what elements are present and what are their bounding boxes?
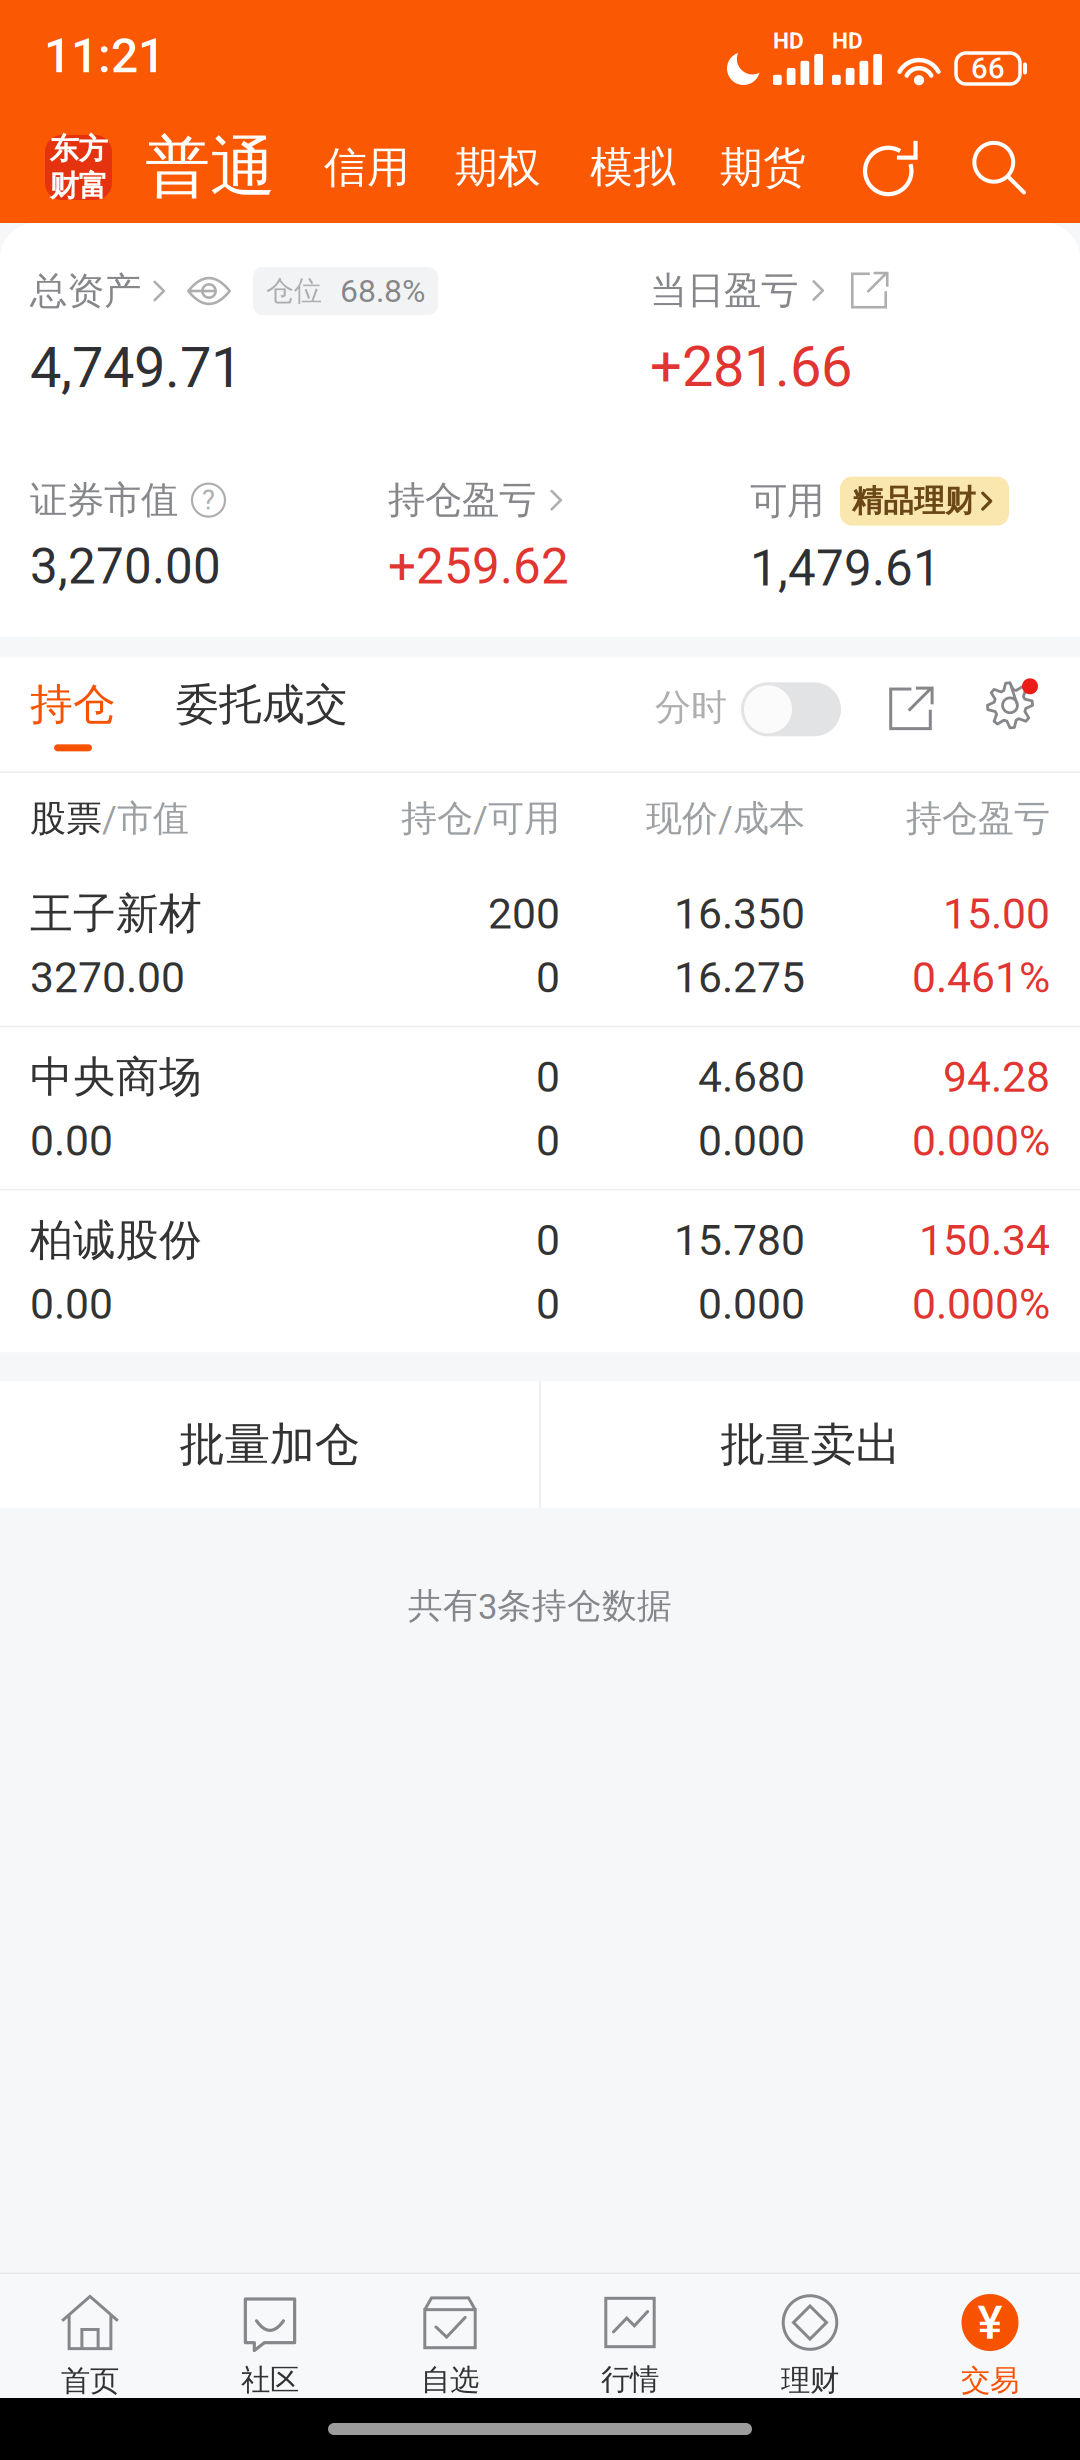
button[interactable]: 理财 <box>720 2274 900 2398</box>
staticText: 精品理财 <box>852 482 976 520</box>
button[interactable]: 社区 <box>180 2274 360 2398</box>
staticText: 150.34 <box>919 1215 1050 1265</box>
staticText: 东方 <box>49 130 107 167</box>
staticText: 11:21 <box>44 28 165 84</box>
button[interactable]: 持仓 <box>30 678 116 751</box>
staticText: /市值 <box>102 796 189 841</box>
staticText: 0.000 <box>698 1279 805 1329</box>
staticText: 首页 <box>61 2362 119 2399</box>
staticText: 15.00 <box>943 889 1050 939</box>
button[interactable]: 精品理财 <box>840 477 1009 526</box>
button[interactable]: 行情 <box>540 2274 720 2398</box>
staticText: 总资产 <box>30 267 141 314</box>
staticText: 94.28 <box>943 1052 1050 1102</box>
staticText: 0.000 <box>698 1116 805 1166</box>
staticText: 柏诚股份 <box>30 1213 202 1267</box>
button[interactable]: Export <box>888 686 933 731</box>
staticText: 68.8% <box>340 272 425 310</box>
staticText: 3270.00 <box>30 953 185 1003</box>
button[interactable]: Refresh <box>861 138 919 196</box>
staticText: 1,479.61 <box>750 540 941 597</box>
staticText: 委托成交 <box>176 678 348 731</box>
staticText: 4.680 <box>698 1052 805 1102</box>
staticText: 现价/成本 <box>646 796 805 841</box>
button[interactable]: 批量加仓 <box>0 1381 539 1508</box>
staticText: 共有3条持仓数据 <box>408 1584 672 1628</box>
staticText: 批量卖出 <box>720 1416 900 1473</box>
button[interactable]: Search <box>970 138 1028 196</box>
staticText: 200 <box>488 889 560 939</box>
staticText: 交易 <box>961 2362 1019 2399</box>
staticText: ? <box>202 484 215 516</box>
staticText: 王子新材 <box>30 887 202 941</box>
button[interactable]: ¥ <box>900 2274 1080 2398</box>
staticText: 当日盈亏 <box>650 267 798 314</box>
staticText: HD <box>773 27 804 54</box>
button[interactable]: 王子新材 <box>0 864 1080 1026</box>
button[interactable]: 柏诚股份 <box>0 1190 1080 1352</box>
staticText: 4,749.71 <box>30 335 242 401</box>
button[interactable]: 期权 <box>455 141 541 194</box>
button[interactable]: 首页 <box>0 2274 180 2398</box>
staticText: 理财 <box>781 2362 839 2399</box>
staticText: 0.000% <box>912 1116 1050 1166</box>
staticText: 证券市值 <box>30 477 178 524</box>
staticText: 可用 <box>750 478 824 525</box>
staticText: 财富 <box>49 167 107 204</box>
staticText: 0.00 <box>30 1116 113 1166</box>
button[interactable]: 中央商场 <box>0 1027 1080 1189</box>
staticText: 中央商场 <box>30 1050 202 1104</box>
staticText: 行情 <box>601 2361 659 2398</box>
staticText: 3,270.00 <box>30 538 221 595</box>
staticText: 0.000% <box>912 1279 1050 1329</box>
button[interactable]: Settings <box>983 679 1037 731</box>
staticText: 自选 <box>421 2361 479 2398</box>
staticText: 0 <box>536 1279 560 1329</box>
staticText: 持仓/可用 <box>401 796 560 841</box>
staticText: 0 <box>536 1116 560 1166</box>
button[interactable]: 模拟 <box>590 141 676 194</box>
staticText: 仓位 <box>266 273 322 309</box>
staticText: 信用 <box>324 141 410 194</box>
staticText: 分时 <box>655 685 727 730</box>
staticText: 0.00 <box>30 1279 113 1329</box>
button[interactable]: 自选 <box>360 2274 540 2398</box>
staticText: 16.275 <box>674 953 805 1003</box>
staticText: 0.461% <box>912 953 1050 1003</box>
staticText: 股票 <box>30 796 102 841</box>
staticText: +281.66 <box>650 334 852 400</box>
staticText: +259.62 <box>388 538 569 595</box>
button[interactable]: 批量卖出 <box>541 1381 1080 1508</box>
staticText: ¥ <box>977 2295 1002 2350</box>
staticText: 0 <box>536 1215 560 1265</box>
staticText: 期货 <box>720 141 806 194</box>
staticText: 0 <box>536 953 560 1003</box>
staticText: 持仓盈亏 <box>906 796 1050 841</box>
button[interactable]: Intraday chart toggle <box>741 682 841 736</box>
staticText: 0 <box>536 1052 560 1102</box>
staticText: 期权 <box>455 141 541 194</box>
staticText: 模拟 <box>590 141 676 194</box>
staticText: 持仓盈亏 <box>388 477 536 524</box>
staticText: 批量加仓 <box>180 1416 360 1473</box>
button[interactable]: 期货 <box>720 141 806 194</box>
button[interactable]: 信用 <box>324 141 410 194</box>
staticText: HD <box>832 27 863 54</box>
staticText: 普通 <box>145 126 275 209</box>
staticText: 15.780 <box>674 1215 805 1265</box>
staticText: 持仓 <box>30 678 116 731</box>
button[interactable]: 委托成交 <box>176 678 348 751</box>
staticText: 社区 <box>241 2361 299 2398</box>
staticText: 16.350 <box>674 889 805 939</box>
staticText: 66 <box>971 51 1005 86</box>
